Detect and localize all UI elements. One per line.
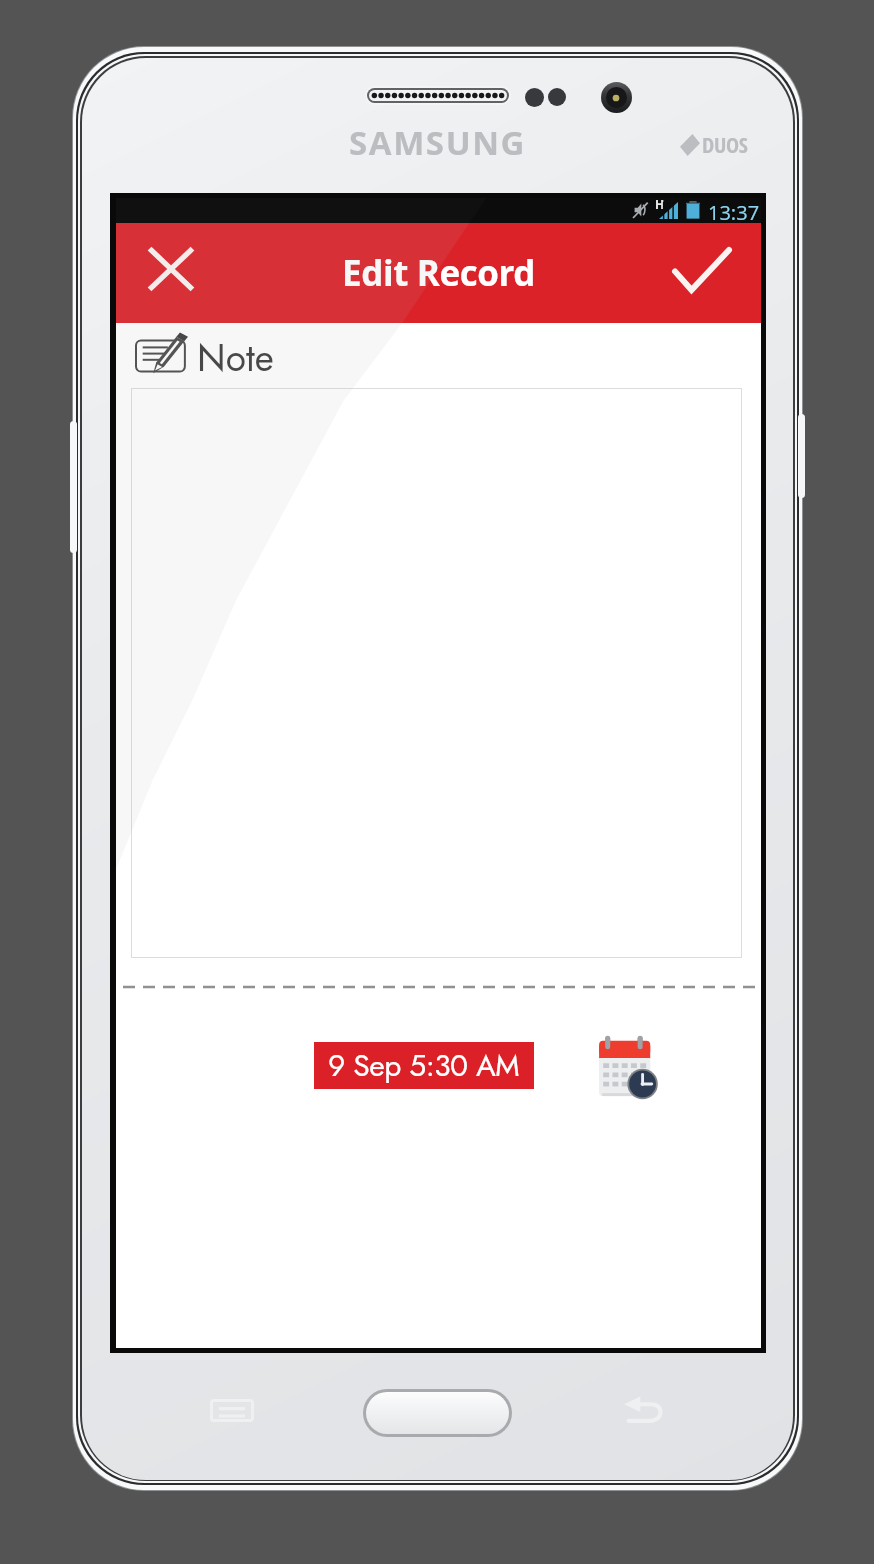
button[interactable]: Close xyxy=(135,233,207,305)
button[interactable]: 9 Sep 5:30 AM xyxy=(314,1042,534,1089)
button[interactable]: Pick date and time xyxy=(593,1031,663,1103)
staticText: Edit Record xyxy=(342,249,536,297)
staticText: DUOS xyxy=(702,129,748,159)
staticText: 13:37 xyxy=(708,199,760,224)
staticText: SAMSUNG xyxy=(349,120,527,165)
staticText: Note xyxy=(197,331,274,384)
staticText: H xyxy=(655,196,665,212)
button[interactable]: Save xyxy=(663,231,741,309)
staticText: 9 Sep 5:30 AM xyxy=(328,1044,520,1087)
button[interactable]: Note text field xyxy=(131,388,742,958)
